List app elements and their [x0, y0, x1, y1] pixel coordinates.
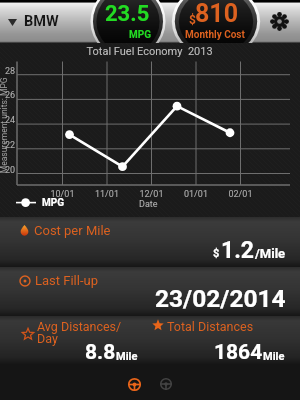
button[interactable]: Last Fill-up	[0, 267, 300, 316]
staticText: MPG	[129, 29, 152, 41]
button[interactable]: Total Distances	[150, 316, 300, 365]
button[interactable]: Avg Distances/ Day	[0, 316, 150, 365]
button[interactable]: $	[176, 0, 256, 43]
button[interactable]: Dashboard	[119, 366, 150, 400]
staticText: Total Distances	[167, 319, 254, 334]
staticText: $	[213, 247, 220, 260]
staticText: 810	[195, 0, 239, 28]
staticText: 23.5	[105, 1, 150, 27]
button[interactable]: Settings	[258, 0, 300, 43]
staticText: Mile	[263, 350, 285, 363]
button[interactable]: BMW	[0, 0, 88, 43]
staticText: /Mile	[255, 246, 286, 261]
staticText: Last Fill-up	[35, 273, 98, 288]
button[interactable]: Cost per Mile	[0, 217, 300, 267]
staticText: 1864	[214, 340, 263, 365]
button[interactable]: 23.5	[96, 0, 162, 43]
staticText: Mile	[116, 350, 138, 363]
staticText: $	[189, 13, 196, 27]
staticText: 8.8	[85, 340, 116, 365]
staticText: Cost per Mile	[34, 223, 111, 238]
staticText: 1.2	[221, 237, 255, 264]
staticText: Monthly Cost	[185, 29, 245, 41]
staticText: BMW	[24, 13, 59, 30]
button[interactable]: Vehicles	[150, 366, 181, 400]
staticText: Avg Distances/ Day	[37, 319, 122, 346]
staticText: 23/02/2014	[155, 284, 286, 313]
